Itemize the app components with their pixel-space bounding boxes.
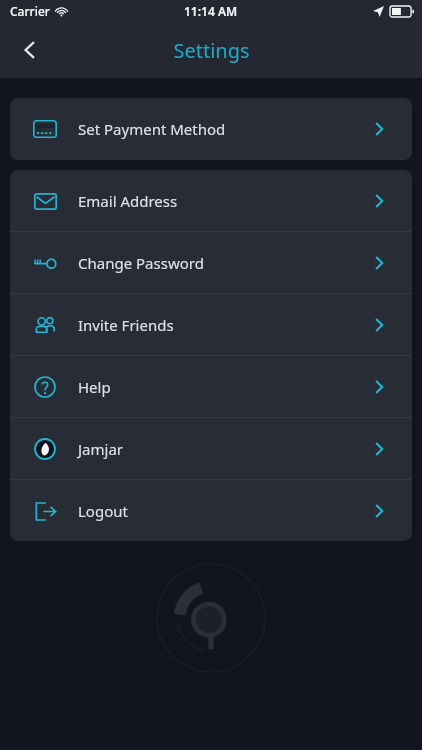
staticText: Help bbox=[78, 377, 111, 397]
staticText: Jamjar bbox=[78, 439, 124, 459]
staticText: Email Address bbox=[78, 191, 178, 211]
staticText: Change Password bbox=[78, 253, 204, 273]
staticText: Set Payment Method bbox=[78, 119, 226, 139]
staticText: Invite Friends bbox=[78, 315, 174, 335]
staticText: Carrier bbox=[10, 3, 50, 19]
button[interactable]: Logout bbox=[10, 480, 412, 541]
button[interactable]: Invite Friends bbox=[10, 294, 412, 355]
staticText: Settings bbox=[173, 37, 250, 64]
button[interactable]: Help bbox=[10, 356, 412, 417]
button[interactable]: Change Password bbox=[10, 232, 412, 293]
button[interactable]: Jamjar bbox=[10, 418, 412, 479]
button[interactable]: Email Address bbox=[10, 170, 412, 231]
button[interactable]: Set Payment Method bbox=[10, 98, 412, 160]
staticText: Logout bbox=[78, 501, 128, 521]
button[interactable]: Back bbox=[8, 28, 52, 72]
staticText: 11:14 AM bbox=[184, 3, 238, 19]
